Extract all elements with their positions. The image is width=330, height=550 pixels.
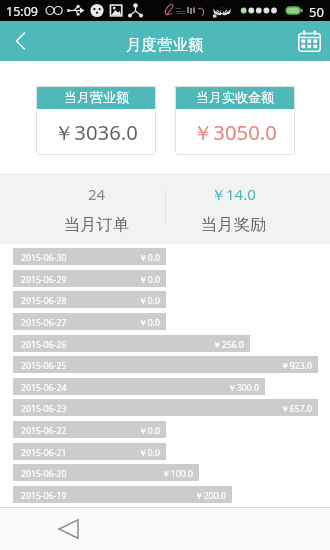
staticText: ￥3036.0 — [54, 118, 138, 146]
button[interactable]: 2015-06-27 — [13, 313, 166, 330]
button[interactable]: Back — [0, 508, 137, 550]
staticText: 2015-06-19 — [21, 490, 67, 502]
button[interactable]: 2015-06-23 — [13, 399, 318, 416]
staticText: 2015-06-24 — [21, 382, 67, 394]
staticText: ￥0.0 — [139, 447, 160, 459]
staticText: ￥0.0 — [139, 425, 160, 437]
staticText: 当月营业额 — [64, 89, 129, 105]
staticText: ￥100.0 — [162, 468, 193, 480]
button[interactable]: 2015-06-25 — [13, 356, 318, 373]
staticText: 月度营业额 — [126, 35, 204, 55]
staticText: ￥256.0 — [213, 339, 244, 351]
staticText: ￥0.0 — [139, 317, 160, 329]
staticText: ￥657.0 — [281, 403, 312, 415]
staticText: ￥3050.0 — [193, 118, 277, 146]
button[interactable]: 2015-06-26 — [13, 335, 250, 352]
staticText: ￥923.0 — [281, 360, 312, 372]
button[interactable]: 2015-06-24 — [13, 378, 265, 395]
staticText: 2015-06-29 — [21, 274, 67, 286]
button[interactable]: 24 — [28, 173, 165, 244]
staticText: 2015-06-30 — [21, 252, 67, 264]
button[interactable]: ￥14.0 — [165, 173, 302, 244]
staticText: 2015-06-22 — [21, 425, 67, 437]
staticText: ￥200.0 — [195, 490, 226, 502]
button[interactable]: 2015-06-28 — [13, 291, 166, 308]
staticText: ￥14.0 — [211, 184, 256, 204]
button[interactable]: 2015-06-21 — [13, 443, 166, 460]
button[interactable]: 2015-06-19 — [13, 486, 232, 503]
staticText: 50 — [309, 3, 324, 21]
button[interactable]: 2015-06-20 — [13, 464, 199, 481]
staticText: 2015-06-28 — [21, 295, 67, 307]
staticText: ￥300.0 — [228, 382, 259, 394]
staticText: 当月实收金额 — [196, 89, 274, 105]
staticText: 当月奖励 — [201, 214, 267, 235]
staticText: 2015-06-27 — [21, 317, 67, 329]
staticText: ￥0.0 — [139, 274, 160, 286]
staticText: 24 — [88, 184, 106, 204]
staticText: 2015-06-23 — [21, 403, 67, 415]
staticText: 2015-06-26 — [21, 339, 67, 351]
staticText: 当月订单 — [64, 214, 130, 235]
staticText: 15:09 — [6, 3, 38, 20]
button[interactable]: 2015-06-22 — [13, 421, 166, 438]
button[interactable]: Back — [0, 21, 40, 61]
staticText: ￥0.0 — [139, 295, 160, 307]
button[interactable]: 2015-06-30 — [13, 248, 166, 265]
staticText: ￥0.0 — [139, 252, 160, 264]
staticText: 2015-06-20 — [21, 468, 67, 480]
staticText: 2015-06-25 — [21, 360, 67, 372]
button[interactable]: 2015-06-29 — [13, 270, 166, 287]
button[interactable]: Calendar — [288, 21, 330, 61]
staticText: 2015-06-21 — [21, 447, 67, 459]
